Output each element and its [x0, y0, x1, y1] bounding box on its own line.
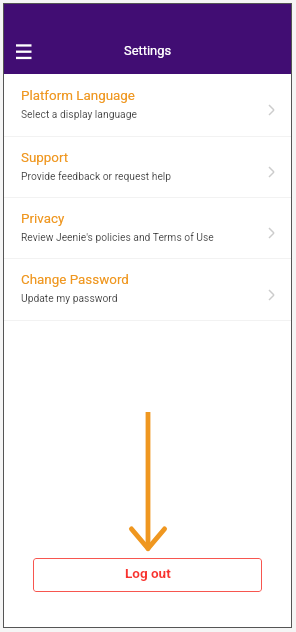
button[interactable]: Privacy — [3, 198, 292, 258]
staticText: Log out — [125, 565, 171, 581]
staticText: Settings — [124, 43, 172, 58]
staticText: Platform Language — [21, 88, 135, 104]
staticText: Update my password — [21, 292, 118, 304]
staticText: Review Jeenie's policies and Terms of Us… — [21, 231, 214, 243]
button[interactable]: Platform Language — [3, 74, 292, 136]
button[interactable]: Support — [3, 137, 292, 197]
button[interactable]: Log out — [33, 558, 262, 592]
button[interactable]: Open navigation menu — [4, 31, 44, 71]
staticText: Support — [21, 150, 69, 166]
staticText: Select a display language — [21, 108, 137, 120]
staticText: Privacy — [21, 211, 65, 227]
staticText: Change Password — [21, 272, 129, 288]
button[interactable]: Change Password — [3, 259, 292, 320]
staticText: Provide feedback or request help — [21, 170, 172, 182]
